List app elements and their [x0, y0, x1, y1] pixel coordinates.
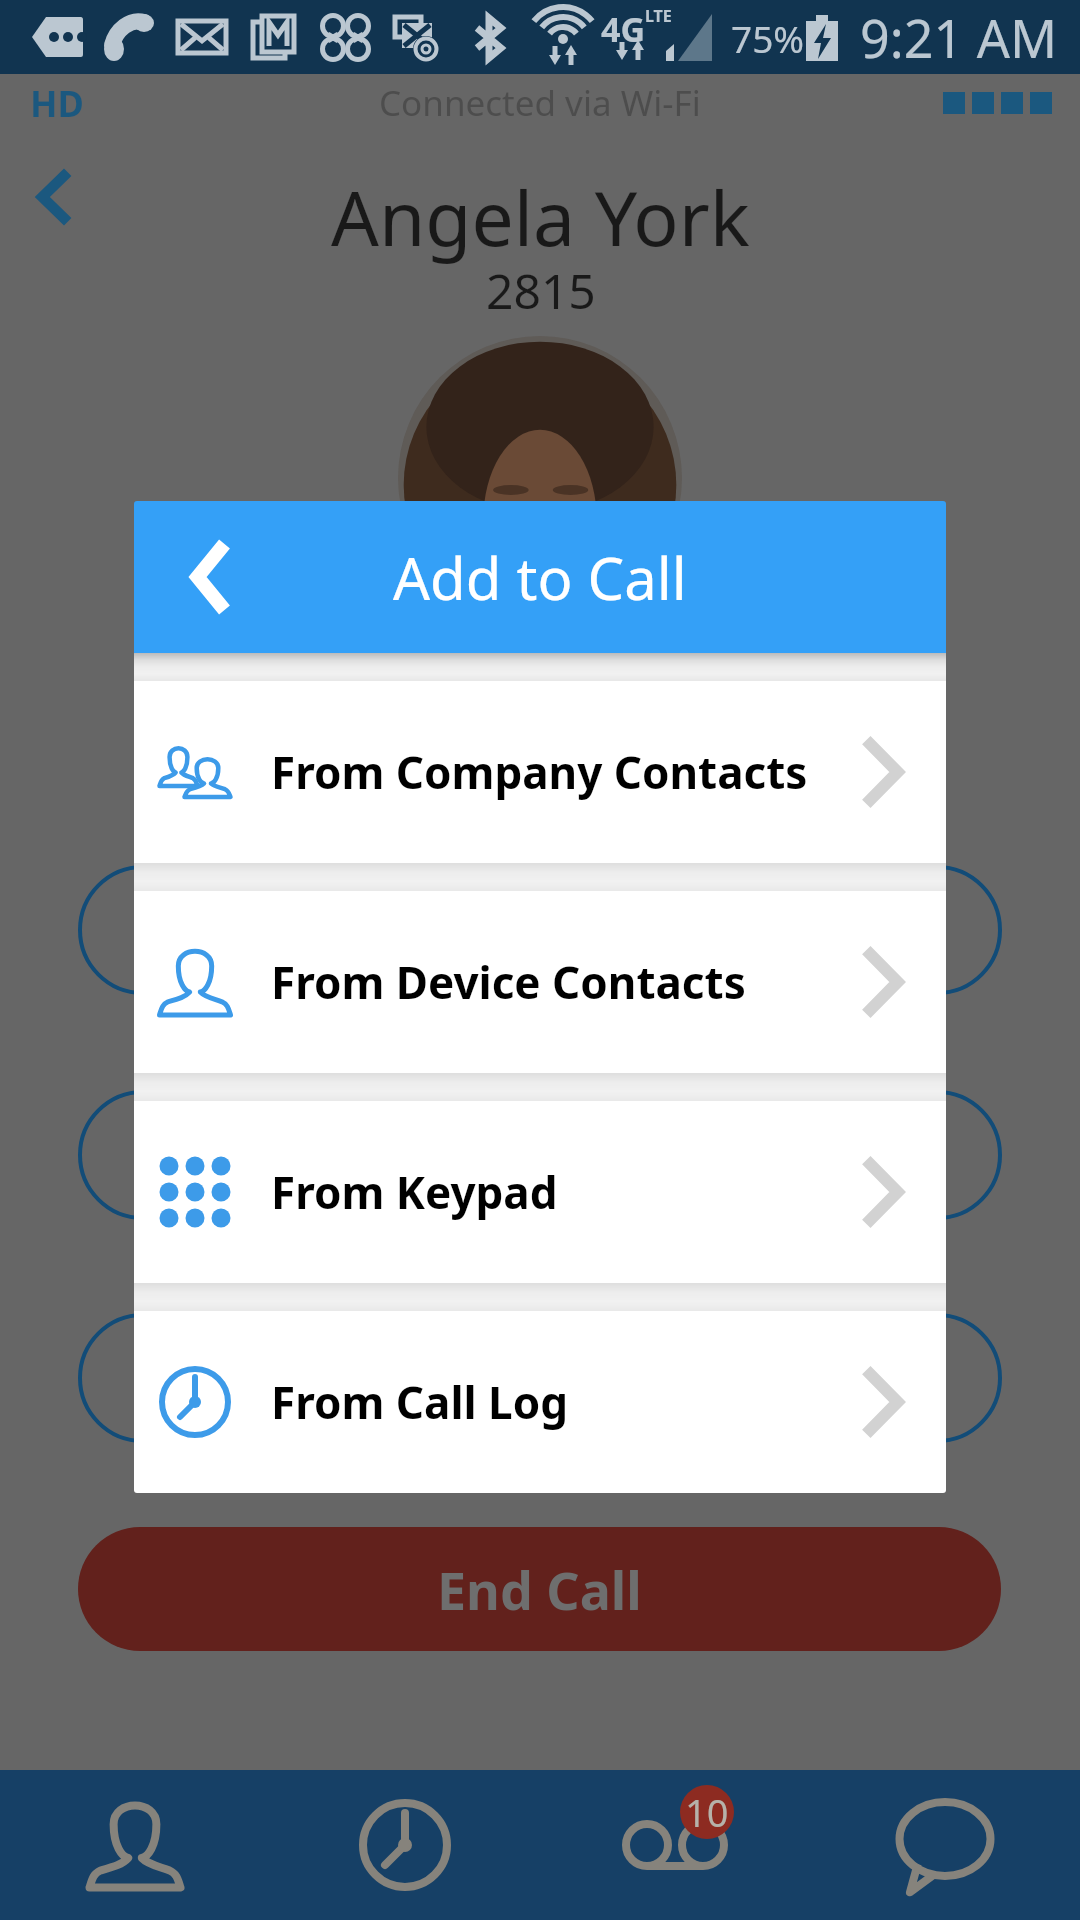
button[interactable]: Messages	[810, 1770, 1080, 1920]
staticText: 2815	[486, 258, 596, 323]
button[interactable]: End Call	[78, 1527, 1001, 1651]
button[interactable]: Back	[134, 501, 286, 653]
button[interactable]: From Keypad	[134, 1101, 946, 1283]
staticText: HD	[30, 79, 84, 128]
staticText: 10	[685, 1786, 729, 1838]
staticText: End Call	[437, 1554, 642, 1625]
staticText: From Company Contacts	[271, 742, 808, 802]
staticText: Angela York	[331, 166, 750, 268]
staticText: LTE	[645, 5, 672, 27]
button[interactable]: From Company Contacts	[134, 681, 946, 863]
button[interactable]: Contacts	[0, 1770, 270, 1920]
button[interactable]: Recents	[270, 1770, 540, 1920]
staticText: 75%	[731, 13, 805, 63]
staticText: 4G	[601, 6, 646, 52]
button[interactable]: Voicemail	[540, 1770, 810, 1920]
staticText: From Keypad	[271, 1162, 558, 1222]
staticText: Add to Call	[393, 538, 687, 617]
staticText: 9:21 AM	[860, 2, 1058, 73]
staticText: Connected via Wi-Fi	[379, 79, 701, 127]
staticText: From Device Contacts	[271, 952, 746, 1012]
button[interactable]: From Device Contacts	[134, 891, 946, 1073]
button[interactable]: From Call Log	[134, 1311, 946, 1493]
staticText: From Call Log	[271, 1372, 568, 1432]
